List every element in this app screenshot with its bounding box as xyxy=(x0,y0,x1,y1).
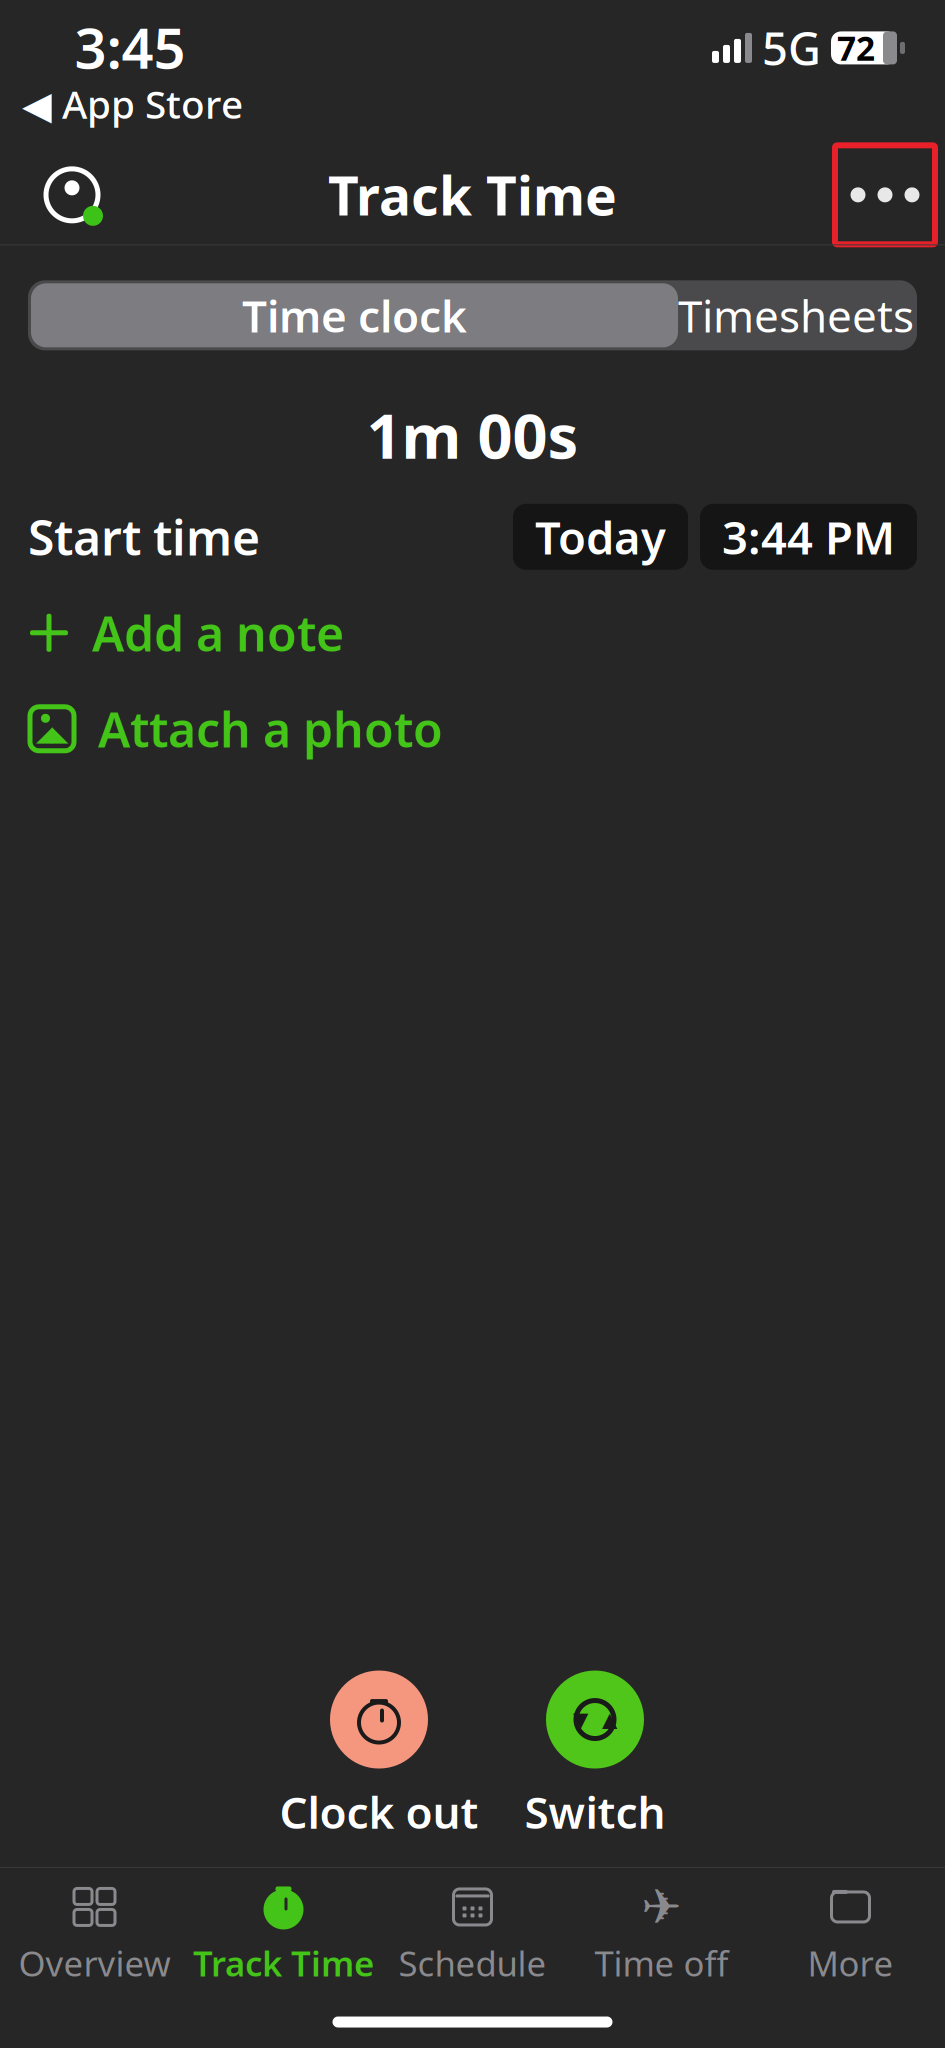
button[interactable]: 3:44 PM xyxy=(700,504,917,570)
staticText: 5G xyxy=(762,18,821,78)
staticText: ◢◣ xyxy=(36,722,68,746)
staticText: ▲ xyxy=(602,1708,617,1731)
button[interactable]: Add a note xyxy=(0,594,945,672)
staticText: Time clock xyxy=(242,286,467,344)
button[interactable]: Schedule xyxy=(378,1884,567,1986)
staticText: Overview xyxy=(18,1940,170,1986)
staticText: Timesheets xyxy=(678,286,914,344)
staticText: Track Time xyxy=(328,159,617,230)
staticText: 3:44 PM xyxy=(722,507,895,567)
staticText: ◀ App Store xyxy=(22,78,243,129)
button[interactable]: ✈ xyxy=(567,1884,756,1986)
staticText: 1m 00s xyxy=(366,394,578,476)
staticText: ✈ xyxy=(641,1880,681,1934)
button[interactable]: ◢◣ xyxy=(0,690,945,768)
staticText: 72 xyxy=(837,26,875,70)
staticText: Clock out xyxy=(279,1782,478,1841)
staticText: Time off xyxy=(594,1940,728,1986)
staticText: 3:45 xyxy=(74,10,185,84)
button[interactable]: Clock out xyxy=(279,1670,478,1841)
staticText: Add a note xyxy=(92,601,344,665)
button[interactable]: Overview xyxy=(0,1884,189,1986)
button[interactable]: Timesheets xyxy=(678,283,917,347)
staticText: More xyxy=(807,1940,893,1986)
staticText: Attach a photo xyxy=(98,697,443,761)
staticText: Switch xyxy=(524,1782,665,1841)
staticText: Today xyxy=(535,507,666,567)
button[interactable]: More options xyxy=(830,145,940,244)
staticText: Track Time xyxy=(193,1940,374,1986)
button[interactable]: Today xyxy=(513,504,688,570)
staticText: ▼ xyxy=(573,1708,588,1731)
button[interactable]: ▲ xyxy=(524,1670,665,1841)
button[interactable]: More xyxy=(756,1884,945,1986)
staticText: Schedule xyxy=(398,1940,546,1986)
button[interactable]: Time clock xyxy=(28,283,678,347)
button[interactable]: Profile xyxy=(24,147,120,243)
button[interactable]: Track Time xyxy=(189,1884,378,1986)
staticText: Start time xyxy=(28,505,260,569)
